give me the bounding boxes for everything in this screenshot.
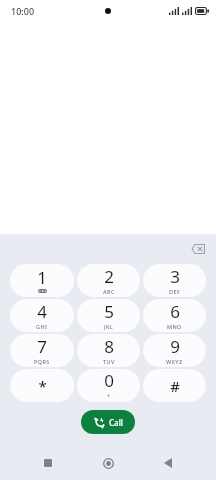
staticText: 10:00 (11, 5, 35, 17)
button[interactable]: Back (138, 451, 198, 475)
button[interactable]: 1 (10, 264, 74, 297)
staticText: 3 (170, 265, 180, 288)
staticText: 0 (104, 369, 114, 392)
button[interactable]: 4 (10, 299, 74, 332)
staticText: 9 (170, 335, 180, 358)
staticText: 1 (37, 266, 47, 289)
staticText: JKL (104, 323, 114, 330)
staticText: 8 (104, 335, 114, 358)
button[interactable]: 8 (77, 334, 140, 367)
button[interactable]: 2 (77, 264, 140, 297)
button[interactable]: Backspace (187, 238, 209, 260)
staticText: 2 (104, 265, 114, 288)
staticText: 7 (37, 335, 47, 358)
staticText: 4 (37, 300, 47, 323)
button[interactable]: 5 (77, 299, 140, 332)
staticText: 5 (104, 300, 114, 323)
staticText: TUV (103, 358, 115, 365)
staticText: MNO (167, 323, 182, 330)
button[interactable]: 9 (143, 334, 206, 367)
button[interactable]: # (143, 369, 206, 402)
staticText: PQRS (34, 358, 50, 365)
staticText: DEF (169, 288, 181, 295)
staticText: + (107, 392, 111, 400)
staticText: Call (109, 417, 123, 428)
button[interactable]: 0 (77, 369, 140, 402)
button[interactable]: Call (81, 410, 135, 434)
staticText: WXYZ (166, 358, 183, 365)
staticText: * (38, 376, 47, 396)
staticText: GHI (36, 323, 48, 330)
staticText: # (170, 376, 180, 396)
button[interactable]: Home (78, 451, 138, 475)
button[interactable]: Recent apps (18, 451, 78, 475)
button[interactable]: 7 (10, 334, 74, 367)
button[interactable]: * (10, 369, 74, 402)
button[interactable]: 6 (143, 299, 206, 332)
staticText: 6 (170, 300, 180, 323)
staticText: ABC (103, 288, 115, 295)
button[interactable]: 3 (143, 264, 206, 297)
